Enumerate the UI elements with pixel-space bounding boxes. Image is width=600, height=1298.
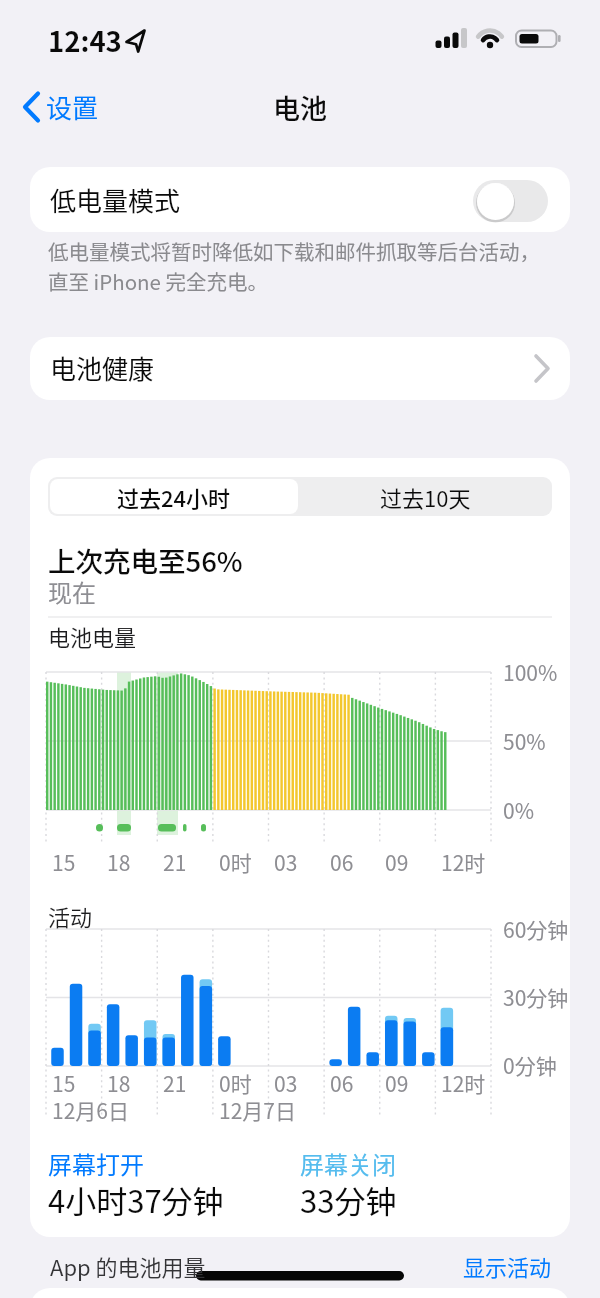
staticText: 电池	[273, 88, 327, 127]
staticText: 21	[163, 1068, 187, 1098]
staticText: 12月7日	[219, 1095, 296, 1125]
staticText: 15	[52, 1068, 76, 1098]
staticText: 低电量模式将暂时降低如下载和邮件抓取等后台活动，	[48, 236, 540, 266]
button[interactable]	[30, 337, 570, 400]
staticText: 活动	[48, 900, 93, 932]
staticText: 18	[107, 847, 131, 877]
staticText: 现在	[48, 574, 96, 609]
button[interactable]	[30, 167, 570, 232]
button[interactable]: 显示活动	[402, 1241, 552, 1291]
staticText: 0时	[219, 847, 252, 877]
staticText: 直至 iPhone 完全充电。	[48, 266, 269, 296]
staticText: 电池健康	[50, 349, 155, 387]
staticText: 03	[274, 847, 298, 877]
staticText: 21	[163, 847, 187, 877]
staticText: 09	[385, 1068, 409, 1098]
staticText: 电池电量	[48, 620, 137, 652]
staticText: 显示活动	[463, 1250, 552, 1282]
staticText: 12时	[441, 1068, 486, 1098]
staticText: 09	[385, 847, 409, 877]
staticText: 12月6日	[52, 1095, 129, 1125]
staticText: 15	[52, 847, 76, 877]
staticText: App 的电池用量	[50, 1250, 206, 1282]
staticText: 12时	[441, 847, 486, 877]
button[interactable]	[300, 479, 550, 514]
staticText: 0分钟	[503, 1050, 557, 1080]
staticText: 上次充电至56%	[48, 540, 243, 580]
button[interactable]	[50, 479, 298, 514]
staticText: 18	[107, 1068, 131, 1098]
staticText: 过去10天	[380, 481, 471, 513]
staticText: 30分钟	[503, 982, 569, 1012]
staticText: 屏幕关闭	[300, 1146, 396, 1181]
staticText: 50%	[503, 726, 546, 756]
staticText: 06	[330, 847, 354, 877]
staticText: 设置	[46, 88, 99, 126]
staticText: 过去24小时	[117, 481, 231, 513]
staticText: 低电量模式	[50, 181, 181, 219]
staticText: 06	[330, 1068, 354, 1098]
staticText: 100%	[503, 657, 558, 687]
staticText: 0%	[503, 795, 534, 825]
staticText: 12:43	[48, 20, 122, 60]
staticText: 0时	[219, 1068, 252, 1098]
staticText: 60分钟	[503, 914, 569, 944]
staticText: 33分钟	[300, 1177, 397, 1222]
staticText: 4小时37分钟	[48, 1177, 224, 1222]
button[interactable]	[473, 180, 548, 222]
staticText: 屏幕打开	[48, 1146, 144, 1181]
staticText: 03	[274, 1068, 298, 1098]
